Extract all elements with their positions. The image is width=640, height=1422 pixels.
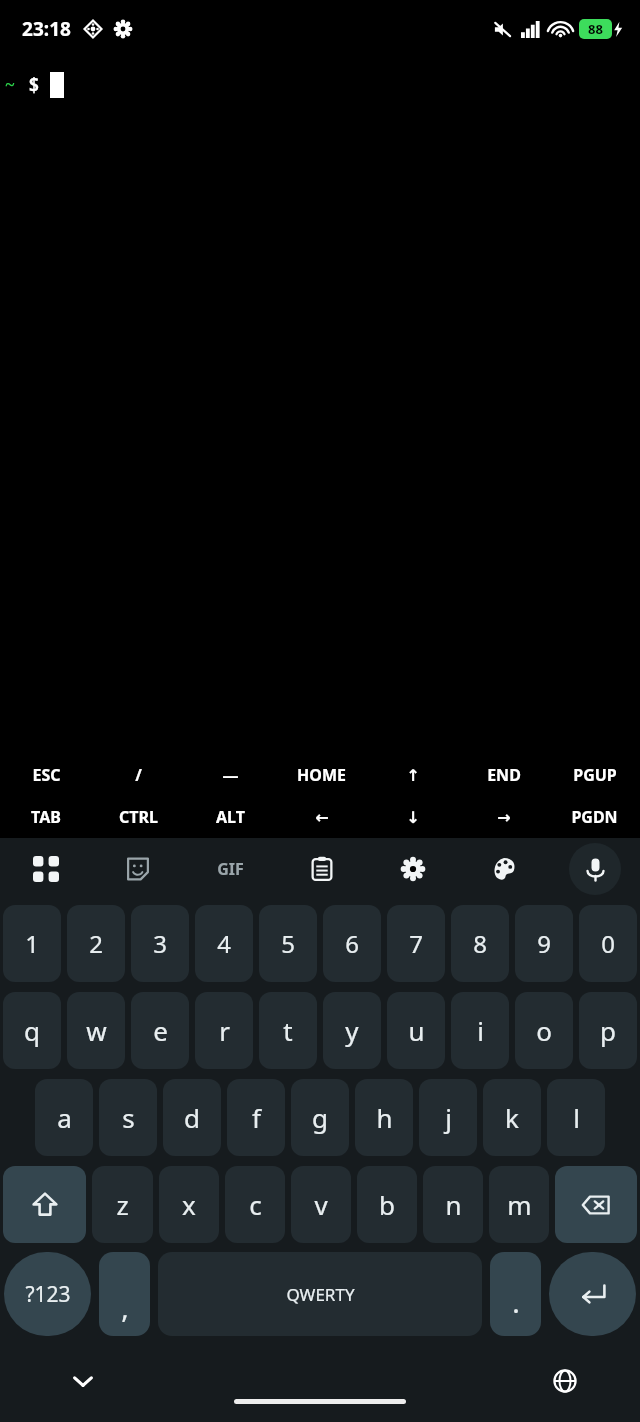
staticText: ESC (32, 764, 61, 786)
staticText: 7 (409, 927, 423, 960)
button[interactable]: z (92, 1166, 153, 1243)
button[interactable]: f (227, 1079, 285, 1156)
button[interactable]: k (483, 1079, 541, 1156)
button[interactable]: Voice input (569, 843, 621, 895)
button[interactable]: v (291, 1166, 351, 1243)
button[interactable]: l (547, 1079, 605, 1156)
button[interactable]: — (184, 754, 276, 796)
button[interactable]: Change language (542, 1358, 588, 1404)
button[interactable]: Shift (3, 1166, 86, 1243)
button[interactable]: s (99, 1079, 157, 1156)
button[interactable]: ?123 (4, 1252, 91, 1336)
button[interactable]: Clipboard (276, 838, 367, 900)
button[interactable]: 4 (195, 905, 253, 982)
button[interactable]: Theme (458, 838, 549, 900)
button[interactable]: g (291, 1079, 349, 1156)
staticText: o (536, 1013, 552, 1048)
staticText: q (24, 1013, 40, 1048)
button[interactable]: h (355, 1079, 413, 1156)
button[interactable]: . (490, 1252, 541, 1336)
staticText: 9 (537, 927, 551, 960)
button[interactable]: QWERTY (158, 1252, 482, 1336)
button[interactable]: x (159, 1166, 219, 1243)
button[interactable]: Backspace (555, 1166, 637, 1243)
staticText: PGDN (571, 806, 618, 828)
staticText: s (122, 1100, 135, 1135)
button[interactable]: c (225, 1166, 285, 1243)
button[interactable]: ↑ (367, 754, 458, 796)
button[interactable]: i (451, 992, 509, 1069)
button[interactable]: ← (276, 796, 367, 838)
staticText: 5 (281, 927, 295, 960)
staticText: ↑ (406, 766, 420, 785)
staticText: a (57, 1100, 72, 1135)
button[interactable]: PGUP (549, 754, 640, 796)
staticText: TAB (31, 806, 61, 828)
button[interactable]: e (131, 992, 189, 1069)
button[interactable]: r (195, 992, 253, 1069)
button[interactable]: 7 (387, 905, 445, 982)
button[interactable]: → (458, 796, 549, 838)
staticText: , (121, 1288, 129, 1326)
button[interactable]: u (387, 992, 445, 1069)
button[interactable]: PGDN (549, 796, 640, 838)
staticText: 6 (345, 927, 359, 960)
staticText: ↓ (406, 808, 420, 827)
button[interactable]: TAB (0, 796, 92, 838)
staticText: j (445, 1100, 452, 1135)
staticText: CTRL (119, 806, 158, 828)
button[interactable]: ESC (0, 754, 92, 796)
staticText: GIF (217, 858, 244, 880)
button[interactable]: p (579, 992, 637, 1069)
button[interactable]: / (92, 754, 184, 796)
staticText: 2 (89, 927, 103, 960)
staticText: 1 (25, 927, 39, 960)
button[interactable]: HOME (276, 754, 367, 796)
button[interactable]: 9 (515, 905, 573, 982)
staticText: y (345, 1013, 359, 1048)
staticText: 0 (601, 927, 615, 960)
staticText: m (507, 1187, 532, 1222)
staticText: e (153, 1013, 168, 1048)
staticText: ← (315, 808, 329, 827)
button[interactable]: 8 (451, 905, 509, 982)
staticText: . (512, 1283, 520, 1321)
button[interactable]: t (259, 992, 317, 1069)
button[interactable]: 3 (131, 905, 189, 982)
button[interactable]: 0 (579, 905, 637, 982)
button[interactable]: Enter (549, 1252, 636, 1336)
button[interactable]: 2 (67, 905, 125, 982)
staticText: u (408, 1013, 425, 1048)
button[interactable]: GIF (184, 838, 276, 900)
button[interactable]: b (357, 1166, 417, 1243)
button[interactable]: o (515, 992, 573, 1069)
staticText: PGUP (573, 764, 617, 786)
button[interactable]: Hide keyboard (60, 1358, 106, 1404)
button[interactable]: Apps (0, 838, 92, 900)
button[interactable]: 5 (259, 905, 317, 982)
button[interactable]: a (35, 1079, 93, 1156)
staticText: n (445, 1187, 462, 1222)
button[interactable]: Settings (367, 838, 458, 900)
button[interactable]: ↓ (367, 796, 458, 838)
staticText: w (86, 1013, 107, 1048)
button[interactable]: END (458, 754, 549, 796)
staticText: g (312, 1100, 328, 1135)
button[interactable]: j (419, 1079, 477, 1156)
button[interactable]: ALT (184, 796, 276, 838)
button[interactable]: q (3, 992, 61, 1069)
button[interactable]: 6 (323, 905, 381, 982)
staticText: z (116, 1187, 129, 1222)
button[interactable]: m (489, 1166, 549, 1243)
button[interactable]: Stickers (92, 838, 184, 900)
staticText: f (252, 1100, 261, 1135)
button[interactable]: y (323, 992, 381, 1069)
button[interactable]: 1 (3, 905, 61, 982)
button[interactable]: n (423, 1166, 483, 1243)
button[interactable]: w (67, 992, 125, 1069)
button[interactable]: CTRL (92, 796, 184, 838)
button[interactable]: , (99, 1252, 150, 1336)
button[interactable]: d (163, 1079, 221, 1156)
staticText: t (283, 1013, 293, 1048)
staticText: c (249, 1187, 262, 1222)
